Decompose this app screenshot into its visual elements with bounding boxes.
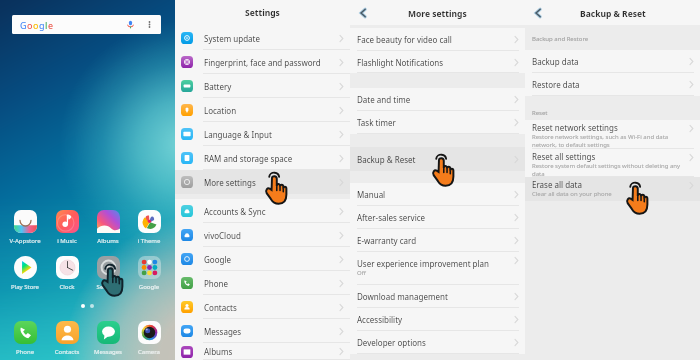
staticText: Task timer (357, 117, 396, 128)
button[interactable]: Manual (350, 183, 525, 206)
button[interactable]: i Music (47, 210, 87, 245)
button[interactable]: G (12, 15, 161, 34)
button[interactable]: Camera (129, 321, 169, 356)
button[interactable]: Google (175, 247, 350, 271)
staticText: Reset all settings (532, 151, 596, 162)
button[interactable]: Clock (47, 256, 87, 291)
staticText: Download management (357, 291, 448, 302)
button[interactable]: i Theme (129, 210, 169, 245)
staticText: More settings (204, 177, 256, 188)
staticText: i Theme (129, 237, 169, 245)
button[interactable]: Phone (5, 321, 45, 356)
staticText: Accounts & Sync (204, 206, 266, 217)
button[interactable]: Contacts (47, 321, 87, 356)
staticText: Language & Input (204, 129, 272, 140)
staticText: Accessibility (357, 314, 403, 325)
staticText: Clock (47, 283, 87, 291)
staticText: User experience improvement plan (357, 258, 490, 269)
button[interactable]: Date and time (350, 88, 525, 111)
button[interactable]: Google (129, 256, 169, 291)
button[interactable]: Battery (175, 74, 350, 98)
staticText: G (20, 19, 27, 31)
staticText: Face beauty for video call (357, 34, 452, 45)
button[interactable]: vivoCloud (175, 223, 350, 247)
staticText: More settings (408, 8, 467, 20)
button[interactable]: Contacts (175, 295, 350, 319)
staticText: Location (204, 105, 237, 116)
button[interactable]: Erase all data (525, 177, 700, 201)
button[interactable]: Language & Input (175, 122, 350, 146)
other: Voice search (125, 19, 136, 30)
staticText: Date and time (357, 94, 411, 105)
staticText: Messages (88, 348, 128, 356)
button[interactable]: Messages (88, 321, 128, 356)
button[interactable]: After-sales service (350, 206, 525, 229)
button[interactable]: V-Appstore (5, 210, 45, 245)
staticText: System update (204, 33, 260, 44)
staticText: g (39, 19, 45, 31)
staticText: Off (357, 269, 366, 277)
staticText: Backup & Reset (580, 8, 646, 20)
button[interactable]: RAM and storage space (175, 146, 350, 170)
staticText: Settings (88, 283, 128, 291)
staticText: vivoCloud (204, 230, 241, 241)
staticText: Messages (204, 326, 242, 337)
staticText: l (45, 19, 48, 31)
button[interactable]: Back (527, 2, 549, 24)
staticText: Restore data (532, 79, 580, 90)
staticText: Play Store (5, 283, 45, 291)
staticText: Backup and Restore (532, 35, 589, 43)
button[interactable]: Play Store (5, 256, 45, 291)
button[interactable]: Developer options (350, 331, 525, 354)
staticText: Manual (357, 189, 386, 200)
staticText: V-Appstore (5, 237, 45, 245)
button[interactable]: Location (175, 98, 350, 122)
button[interactable]: Accounts & Sync (175, 199, 350, 223)
staticText: Reset network settings (532, 122, 618, 133)
button[interactable]: Reset network settings (525, 120, 700, 149)
button[interactable]: Albums (88, 210, 128, 245)
staticText: Phone (5, 348, 45, 356)
button[interactable]: Backup & Reset (350, 147, 525, 171)
staticText: Camera (129, 348, 169, 356)
staticText: Clear all data on your phone (532, 190, 612, 198)
button[interactable]: System update (175, 26, 350, 50)
button[interactable]: Settings (88, 256, 128, 291)
button[interactable]: Backup data (525, 50, 700, 73)
button[interactable]: Flashlight Notifications (350, 51, 525, 73)
button[interactable]: Albums (175, 343, 350, 360)
staticText: o (33, 19, 39, 31)
button[interactable]: Fingerprint, face and password (175, 50, 350, 74)
button[interactable]: Reset all settings (525, 149, 700, 177)
staticText: Backup data (532, 56, 579, 67)
button[interactable]: E-warranty card (350, 229, 525, 252)
button[interactable]: More settings (175, 170, 350, 194)
staticText: Albums (88, 237, 128, 245)
staticText: o (27, 19, 33, 31)
staticText: Developer options (357, 337, 426, 348)
other: More options (145, 20, 154, 29)
staticText: Restore network settings, such as Wi-Fi … (532, 133, 669, 149)
button[interactable]: Download management (350, 285, 525, 308)
button[interactable]: Messages (175, 319, 350, 343)
staticText: Reset (532, 109, 548, 117)
staticText: RAM and storage space (204, 153, 293, 164)
staticText: Contacts (47, 348, 87, 356)
staticText: i Music (47, 237, 87, 245)
button[interactable]: Accessibility (350, 308, 525, 331)
staticText: Flashlight Notifications (357, 57, 444, 68)
button[interactable]: Face beauty for video call (350, 28, 525, 51)
button[interactable]: User experience improvement plan (350, 252, 525, 285)
staticText: Phone (204, 278, 229, 289)
staticText: Battery (204, 81, 232, 92)
staticText: E-warranty card (357, 235, 417, 246)
staticText: e (48, 19, 54, 31)
staticText: Google (129, 283, 169, 291)
button[interactable]: Phone (175, 271, 350, 295)
staticText: Fingerprint, face and password (204, 57, 321, 68)
button[interactable]: Restore data (525, 73, 700, 96)
button[interactable]: Task timer (350, 111, 525, 134)
staticText: Settings (245, 7, 280, 19)
button[interactable]: Back (352, 2, 374, 24)
staticText: Restore system default settings without … (532, 162, 681, 177)
